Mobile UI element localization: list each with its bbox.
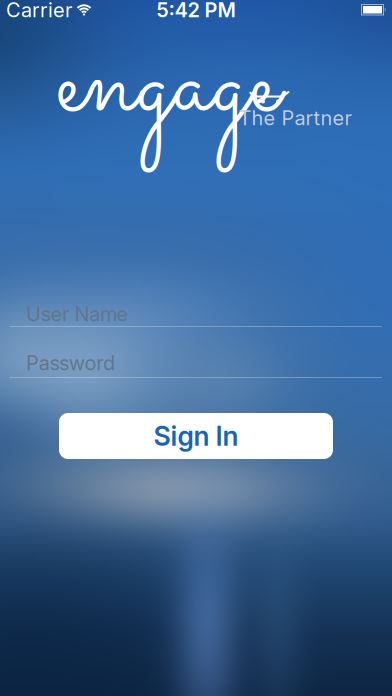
staticText: 5:42 PM: [156, 0, 235, 22]
button[interactable]: Sign In: [59, 413, 333, 459]
button[interactable]: Password: [0, 0, 392, 696]
staticText: User Name: [26, 302, 129, 326]
staticText: The Partner: [238, 106, 351, 130]
button[interactable]: User Name: [0, 0, 392, 696]
staticText: engage: [56, 0, 280, 172]
staticText: Sign In: [153, 420, 238, 452]
staticText: Carrier: [6, 0, 72, 22]
staticText: Password: [26, 351, 115, 375]
